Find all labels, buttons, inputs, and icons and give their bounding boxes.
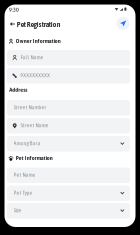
button[interactable]: Use current location <box>117 17 130 30</box>
staticText: 9:30 <box>9 6 19 13</box>
button[interactable]: Size <box>7 203 130 218</box>
staticText: Owner Information <box>16 37 61 44</box>
staticText: Among Bara <box>14 140 41 146</box>
staticText: Street Number <box>14 104 47 110</box>
staticText: Pet Information <box>16 154 53 161</box>
staticText: Street Name <box>20 122 48 128</box>
button[interactable]: Pet Type <box>7 185 130 201</box>
staticText: 9XXXXXXXXX <box>20 72 50 78</box>
button[interactable]: Street Number <box>7 100 130 115</box>
staticText: Pet Type <box>14 189 33 196</box>
button[interactable]: 9XXXXXXXXX <box>7 68 130 83</box>
staticText: Pet Registration <box>17 20 61 29</box>
button[interactable]: Full Name <box>7 50 130 65</box>
staticText: Full Name <box>20 54 43 60</box>
button[interactable]: Among Bara <box>7 136 130 151</box>
staticText: Size <box>14 207 22 213</box>
button[interactable]: Pet Name <box>7 167 130 183</box>
button[interactable]: Street Name <box>7 118 130 133</box>
staticText: Pet Name <box>14 171 36 178</box>
staticText: Address <box>9 86 27 93</box>
button[interactable]: Back <box>8 19 17 29</box>
